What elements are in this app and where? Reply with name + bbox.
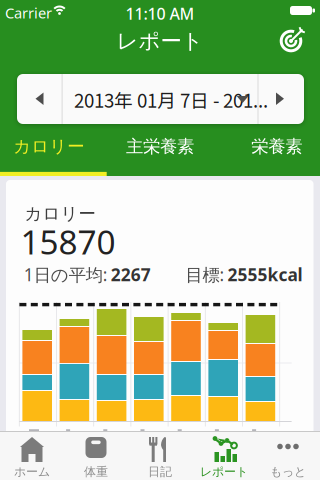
staticText: ホーム [14, 464, 50, 479]
button[interactable]: 体重 [64, 431, 128, 480]
staticText: レポート [200, 464, 248, 479]
staticText: Carrier [5, 3, 52, 22]
staticText: レポート [116, 28, 203, 54]
button[interactable]: ホーム [0, 431, 64, 480]
staticText: 2013年 01月 7日 - 201... [74, 86, 268, 113]
button[interactable]: 栄養素 [213, 125, 320, 168]
button[interactable]: 次の週 [258, 74, 304, 124]
staticText: 11:10 AM [125, 3, 194, 24]
staticText: もっと [270, 464, 306, 479]
staticText: カロリー [13, 136, 84, 157]
staticText: 1日の平均: [24, 263, 108, 286]
button[interactable]: レポート [192, 431, 256, 480]
staticText: カロリー [24, 203, 95, 224]
staticText: 15870 [20, 219, 115, 264]
staticText: 日記 [148, 464, 172, 479]
button[interactable]: 日記 [128, 431, 192, 480]
button[interactable]: もっと [256, 431, 320, 480]
staticText: 主栄養素 [126, 136, 194, 157]
button[interactable]: 期間を選択 [63, 74, 258, 124]
staticText: 体重 [84, 464, 108, 479]
button[interactable]: 主栄養素 [107, 125, 213, 168]
staticText: 目標: [186, 263, 225, 286]
staticText: 2267 [111, 263, 151, 286]
button[interactable]: 目標 [270, 22, 314, 62]
button[interactable]: 前の週 [17, 74, 62, 124]
button[interactable]: カロリー [0, 125, 107, 168]
staticText: 2555kcal [228, 263, 303, 286]
staticText: 栄養素 [251, 136, 302, 157]
